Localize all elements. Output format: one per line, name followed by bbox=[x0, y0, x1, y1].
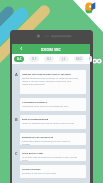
staticText: To be very near and almost accomplish a … bbox=[22, 156, 78, 159]
button[interactable]: A-C bbox=[14, 56, 24, 62]
button[interactable]: Back To Drawing Board bbox=[20, 115, 86, 129]
staticText: Address The Issue & Work Two In The Bush bbox=[22, 73, 71, 76]
staticText: might lose everything. bbox=[22, 83, 45, 86]
button[interactable]: D-F bbox=[29, 56, 39, 62]
staticText: A-C bbox=[17, 57, 22, 61]
staticText: Something good that isn't recognized at … bbox=[22, 105, 69, 108]
button[interactable]: Chunky Monkey bbox=[20, 165, 86, 178]
button[interactable]: G-I bbox=[44, 56, 54, 62]
button[interactable]: Close But No Cigar bbox=[20, 149, 86, 161]
staticText: Barking Up The Wrong Tree bbox=[22, 136, 54, 139]
button[interactable]: M-O bbox=[74, 56, 84, 62]
button[interactable]: Back bbox=[17, 44, 25, 52]
staticText: J-L bbox=[62, 57, 66, 61]
staticText: A mistake made in something you are tryi… bbox=[22, 140, 71, 143]
staticText: G-I bbox=[47, 57, 52, 61]
button[interactable]: P-R bbox=[89, 56, 92, 62]
button[interactable]: Barking Up The Wrong Tree bbox=[20, 133, 86, 145]
staticText: IDIOM SRC bbox=[41, 47, 61, 52]
button[interactable]: Address The Issue & Work Two In The Bush bbox=[20, 70, 86, 94]
staticText: B bbox=[15, 117, 18, 122]
staticText: Different in the face or way some. bbox=[22, 172, 57, 175]
staticText: Back To Drawing Board bbox=[22, 118, 49, 121]
staticText: taking a risk for items, hesitant critic… bbox=[22, 80, 72, 83]
staticText: C bbox=[15, 151, 18, 156]
button[interactable]: A Blessing in Disguise bbox=[20, 98, 86, 111]
staticText: When an attempt fails and it's time to s… bbox=[22, 122, 75, 125]
staticText: Close But No Cigar bbox=[22, 152, 44, 155]
button[interactable]: J-L bbox=[59, 56, 69, 62]
staticText: D-F bbox=[32, 57, 37, 61]
staticText: Having something that is certain to caus… bbox=[22, 77, 79, 80]
staticText: achieve. bbox=[22, 143, 31, 145]
staticText: Chunky Monkey bbox=[22, 168, 41, 171]
staticText: short. bbox=[22, 159, 29, 161]
staticText: P-R bbox=[89, 57, 92, 61]
staticText: A Blessing in Disguise bbox=[22, 101, 47, 104]
staticText: A bbox=[15, 72, 18, 77]
staticText: M-O bbox=[76, 57, 82, 61]
